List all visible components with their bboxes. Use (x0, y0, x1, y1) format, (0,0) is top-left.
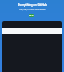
staticText: Sign up (29, 15, 34, 17)
button[interactable]: Sign up (29, 14, 34, 17)
staticText: Build, scale, and deliver secure softwar… (19, 9, 46, 11)
staticText: Everything on GitHub (18, 3, 47, 7)
